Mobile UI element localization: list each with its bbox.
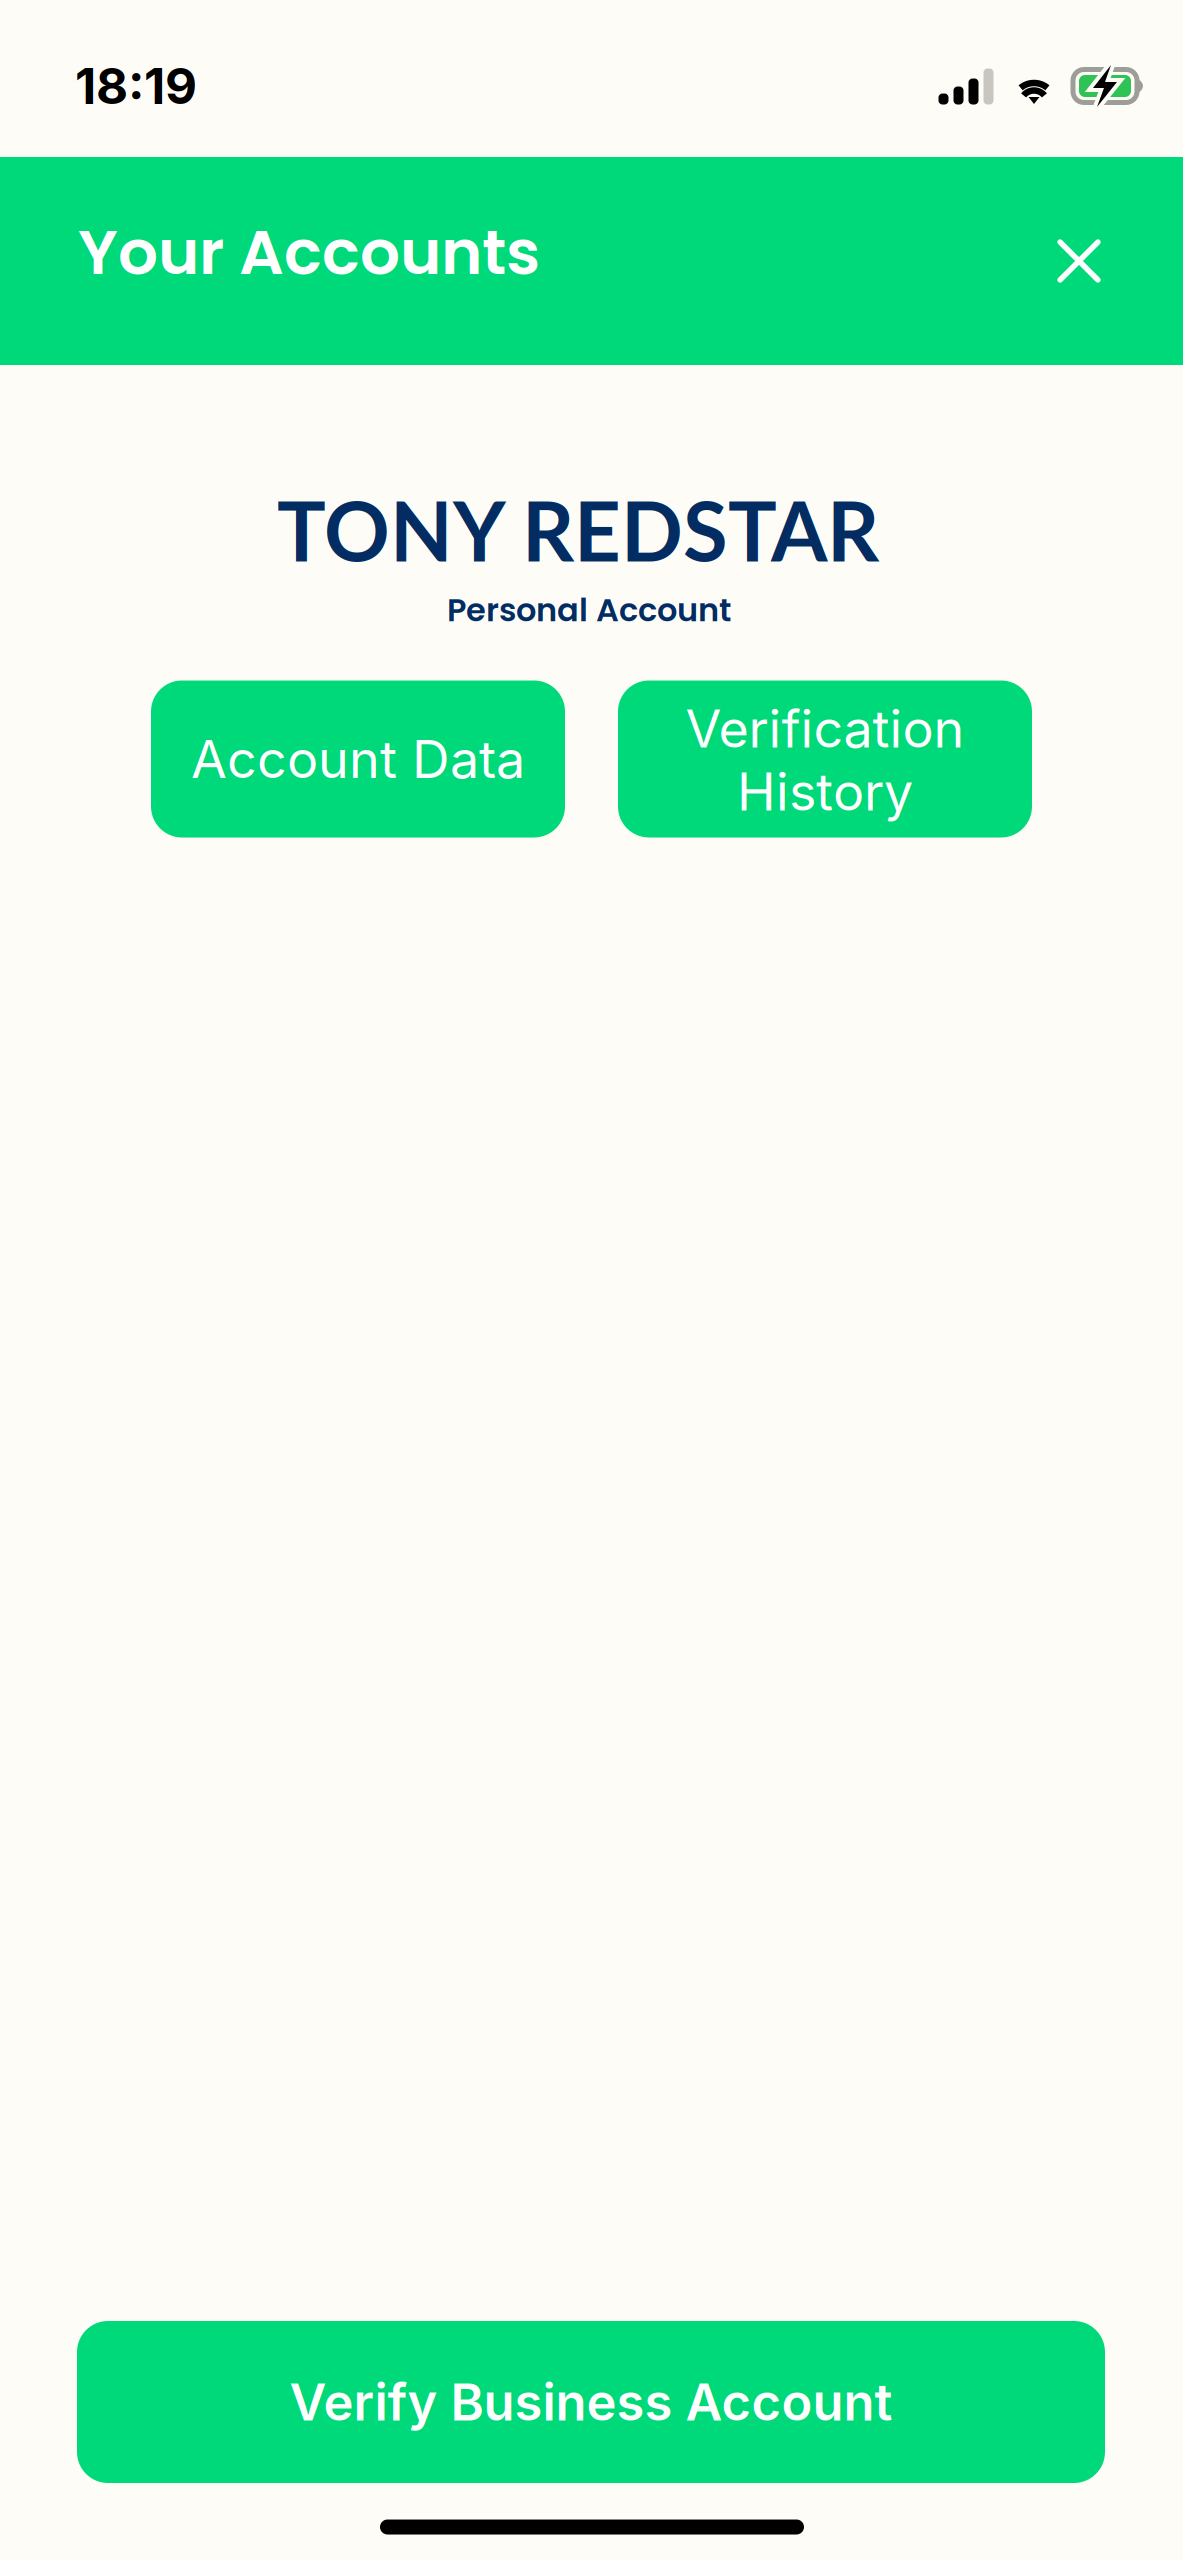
- button[interactable]: Your Accounts: [78, 208, 540, 296]
- button[interactable]: Close: [1024, 206, 1134, 316]
- button[interactable]: Account Data: [151, 680, 565, 837]
- staticText: Account Data: [191, 727, 525, 790]
- button[interactable]: Verification: [618, 680, 1032, 837]
- button[interactable]: Verify Business Account: [77, 2321, 1105, 2483]
- staticText: TONY REDSTAR: [277, 481, 879, 579]
- staticText: Personal Account: [447, 588, 731, 632]
- staticText: Verification: [685, 697, 964, 760]
- staticText: History: [737, 760, 913, 823]
- staticText: 18:19: [75, 56, 197, 116]
- staticText: Your Accounts: [78, 208, 540, 296]
- staticText: Verify Business Account: [289, 2371, 892, 2433]
